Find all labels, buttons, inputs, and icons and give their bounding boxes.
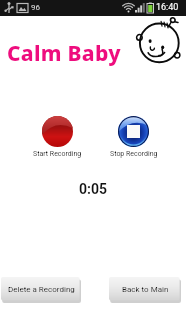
staticText: Start Recording	[33, 150, 82, 158]
staticText: 0:05	[0, 181, 186, 197]
staticText: Stop Recording	[110, 150, 158, 158]
button[interactable]: Start Recording	[26, 116, 89, 158]
staticText: Delete a Recording	[8, 285, 75, 294]
staticText: Calm Baby	[7, 39, 121, 68]
button[interactable]: Stop Recording	[102, 116, 165, 158]
button[interactable]: Delete a Recording	[1, 277, 81, 303]
staticText: 16:40	[156, 2, 179, 13]
staticText: Back to Main	[122, 285, 169, 294]
staticText: 96	[31, 3, 40, 12]
button[interactable]: Back to Main	[109, 277, 181, 303]
